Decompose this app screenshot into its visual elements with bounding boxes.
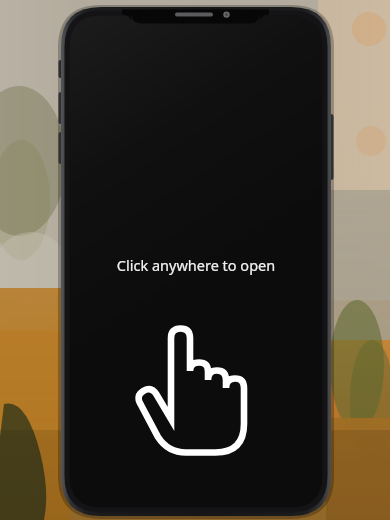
button[interactable]: Click anywhere to open [0, 0, 390, 520]
staticText: Click anywhere to open [76, 255, 316, 275]
